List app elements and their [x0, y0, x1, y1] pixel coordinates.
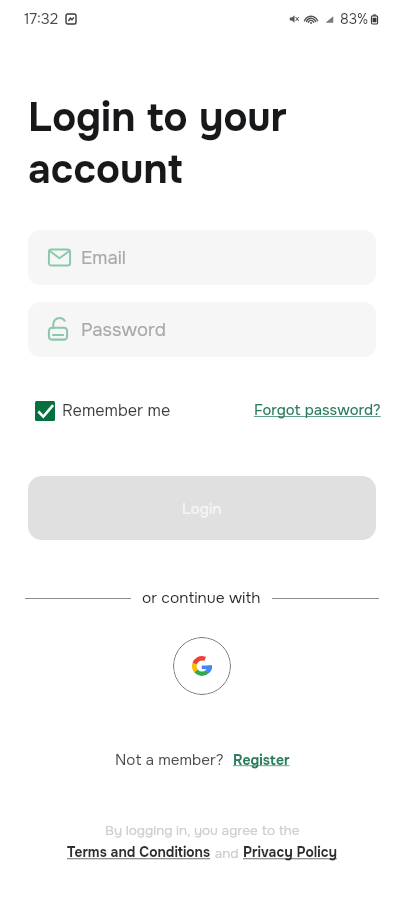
staticText: Email: [81, 246, 126, 270]
staticText: Register: [233, 751, 290, 769]
button[interactable]: Terms and Conditions: [67, 844, 211, 862]
button[interactable]: Privacy Policy: [243, 844, 337, 862]
staticText: Forgot password?: [254, 401, 381, 420]
button[interactable]: Email: [28, 230, 376, 285]
staticText: 17:32: [24, 9, 59, 28]
staticText: Login to your account: [28, 92, 287, 196]
staticText: Remember me: [62, 400, 171, 421]
button[interactable]: Password: [28, 302, 376, 357]
staticText: Terms and Conditions: [67, 844, 211, 862]
staticText: By logging in, you agree to the: [105, 822, 300, 839]
button[interactable]: Sign in with Google: [173, 637, 231, 695]
button[interactable]: Remember me: [35, 400, 171, 421]
button[interactable]: Forgot password?: [254, 401, 381, 420]
button[interactable]: Login: [28, 476, 376, 540]
staticText: Password: [81, 318, 166, 342]
staticText: Privacy Policy: [243, 844, 337, 862]
staticText: and: [211, 845, 243, 862]
staticText: Not a member?: [115, 750, 224, 770]
staticText: 83%: [340, 10, 369, 28]
staticText: Login: [182, 499, 222, 518]
staticText: or continue with: [142, 588, 261, 608]
button[interactable]: Register: [233, 751, 290, 769]
